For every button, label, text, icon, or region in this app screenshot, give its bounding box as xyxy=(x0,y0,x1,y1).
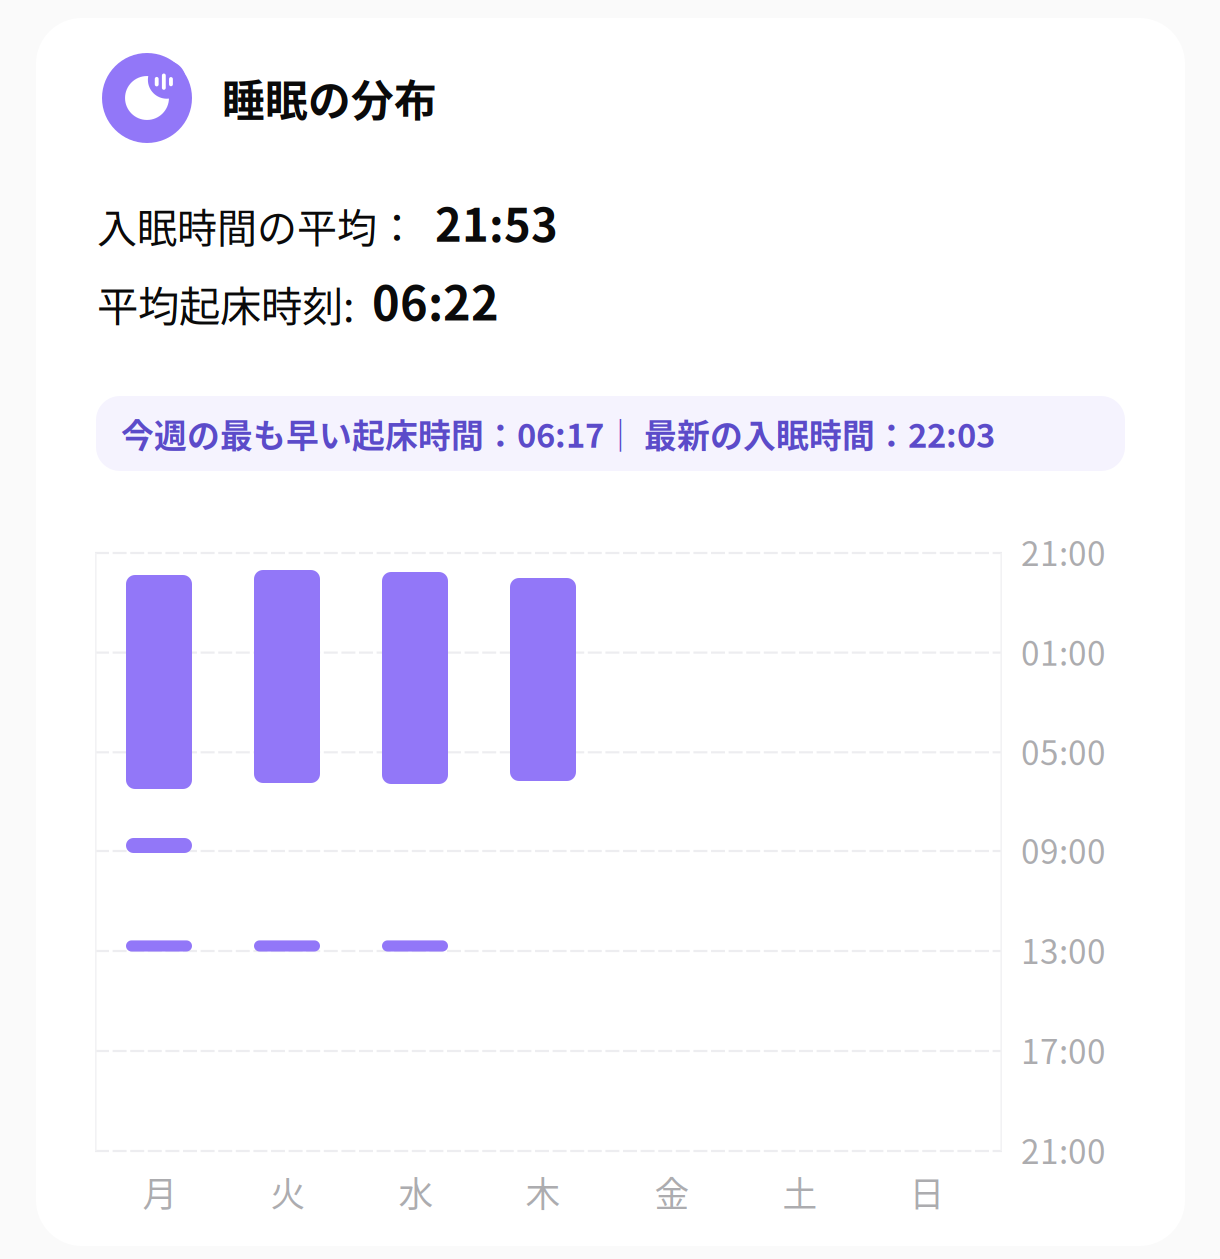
staticText: 日 xyxy=(909,1167,944,1217)
staticText: 05:00 xyxy=(1021,727,1106,775)
staticText: 17:00 xyxy=(1021,1025,1106,1074)
staticText: 金 xyxy=(654,1167,689,1217)
staticText: 平均起床時刻: 06:22 xyxy=(97,267,499,333)
staticText: 今週の最も早い起床時間：06:17｜ 最新の入眠時間：22:03 xyxy=(121,410,995,457)
staticText: 01:00 xyxy=(1021,627,1106,675)
staticText: 21:00 xyxy=(1021,527,1106,576)
staticText: 月 xyxy=(142,1167,177,1217)
staticText: 09:00 xyxy=(1021,825,1106,874)
staticText: 21:00 xyxy=(1021,1125,1106,1174)
staticText: 土 xyxy=(782,1167,817,1217)
button[interactable]: 睡眠の分布 xyxy=(36,18,1185,1246)
staticText: 水 xyxy=(398,1167,433,1217)
staticText: 木 xyxy=(525,1167,560,1217)
staticText: 火 xyxy=(270,1167,305,1217)
staticText: 13:00 xyxy=(1021,925,1106,974)
staticText: 睡眠の分布 xyxy=(222,67,437,129)
staticText: 入眠時間の平均： 21:53 xyxy=(97,190,558,254)
